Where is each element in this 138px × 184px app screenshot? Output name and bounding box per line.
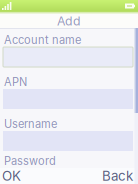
button[interactable] [0, 131, 138, 151]
staticText: OK [2, 168, 21, 184]
staticText: Username [4, 117, 57, 131]
staticText: Password [4, 154, 56, 168]
button[interactable] [0, 47, 138, 67]
staticText: APN [4, 75, 27, 89]
staticText: Back [102, 168, 133, 184]
button[interactable]: Back [69, 168, 138, 184]
button[interactable]: OK [0, 168, 69, 184]
staticText: Account name [4, 33, 81, 47]
button[interactable] [0, 89, 138, 109]
staticText: Add [57, 14, 81, 28]
